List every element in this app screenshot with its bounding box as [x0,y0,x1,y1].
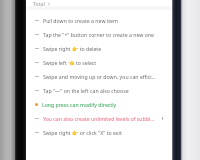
button[interactable]: Tap the "+" button corner to create a ne… [27,27,171,41]
button[interactable]: Pull down to create a new item [27,13,171,27]
button[interactable]: Expand sub level [161,117,164,120]
staticText: Swipe right 👉 or click "X" to exit [43,129,122,136]
other: Phone edge [172,0,181,160]
button[interactable]: Swipe and moving up or down, you can eff… [27,69,171,83]
staticText: Tap the "+" button corner to create a ne… [43,31,154,38]
staticText: Swipe left 👈 to select [43,59,97,66]
button[interactable]: Tap "—" on the left can also choose [27,83,171,97]
button[interactable]: Swipe right 👉 or click "X" to exit [27,125,171,139]
button[interactable]: Swipe right 👉 to delete [27,41,171,55]
staticText: Tap "—" on the left can also choose [43,87,129,94]
staticText: Pull down to create a new item [43,17,118,24]
staticText: You can also create unlimited levels of … [43,115,155,122]
button[interactable]: Swipe left 👈 to select [27,55,171,69]
button[interactable]: You can also create unlimited levels of … [27,111,171,125]
staticText: Swipe right 👉 to delete [43,45,102,52]
button[interactable]: Total [33,0,51,7]
button[interactable]: Long press can modify directly [27,97,171,111]
staticText: Total [33,0,45,7]
staticText: Swipe and moving up or down, you can eff… [43,73,156,80]
staticText: Long press can modify directly [42,101,117,108]
